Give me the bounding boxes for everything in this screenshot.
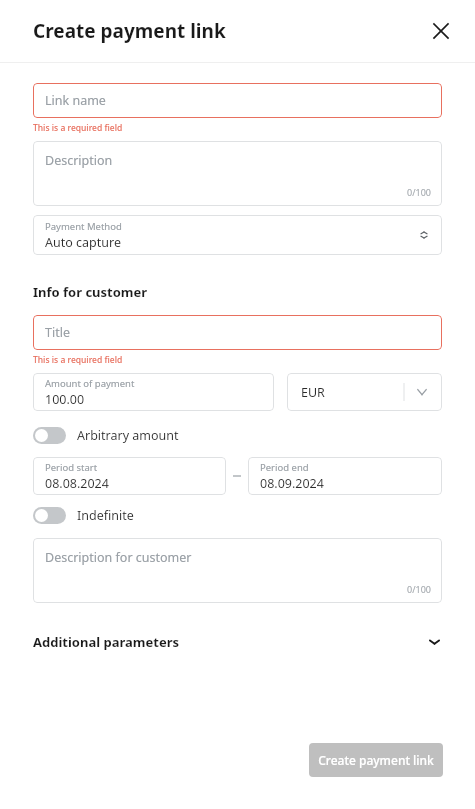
button[interactable]: Select currency bbox=[402, 381, 434, 403]
staticText: Auto capture bbox=[45, 234, 121, 251]
button[interactable]: Title bbox=[33, 315, 442, 350]
staticText: Period end bbox=[260, 461, 309, 474]
button[interactable]: Amount of payment bbox=[33, 373, 274, 411]
button[interactable]: Payment Method bbox=[33, 215, 442, 255]
staticText: Amount of payment bbox=[45, 377, 135, 390]
staticText: EUR bbox=[301, 384, 325, 401]
staticText: Link name bbox=[45, 92, 106, 109]
other: Toggle bbox=[33, 507, 66, 524]
other: Toggle bbox=[33, 427, 66, 444]
staticText: 0/100 bbox=[407, 186, 431, 198]
staticText: Additional parameters bbox=[33, 633, 426, 651]
button[interactable]: Toggle bbox=[33, 425, 179, 446]
button[interactable]: Description for customer bbox=[33, 538, 442, 603]
staticText: 08.08.2024 bbox=[45, 475, 109, 492]
staticText: Description bbox=[45, 152, 113, 169]
staticText: Indefinite bbox=[77, 507, 134, 524]
staticText: Create payment link bbox=[33, 18, 226, 44]
button[interactable]: Description bbox=[33, 141, 442, 206]
button[interactable]: Select payment method bbox=[415, 226, 433, 244]
staticText: Title bbox=[45, 324, 70, 341]
staticText: This is a required field bbox=[33, 122, 123, 134]
staticText: Period start bbox=[45, 461, 98, 474]
button[interactable]: Close bbox=[423, 13, 459, 49]
button[interactable]: Additional parameters bbox=[33, 629, 442, 655]
staticText: Create payment link bbox=[318, 752, 434, 768]
staticText: 08.09.2024 bbox=[260, 475, 324, 492]
button[interactable]: EUR bbox=[287, 373, 442, 411]
staticText: Info for customer bbox=[33, 283, 148, 301]
button[interactable]: Toggle bbox=[33, 505, 134, 526]
button[interactable]: Period end bbox=[248, 457, 442, 495]
staticText: Payment Method bbox=[45, 220, 122, 233]
staticText: This is a required field bbox=[33, 354, 123, 366]
button[interactable]: Link name bbox=[33, 83, 442, 118]
staticText: 100.00 bbox=[45, 391, 85, 408]
button[interactable]: Period start bbox=[33, 457, 226, 495]
staticText: Arbitrary amount bbox=[77, 427, 179, 444]
button[interactable]: Create payment link bbox=[309, 743, 443, 777]
staticText: 0/100 bbox=[407, 583, 431, 595]
staticText: Description for customer bbox=[45, 549, 192, 566]
